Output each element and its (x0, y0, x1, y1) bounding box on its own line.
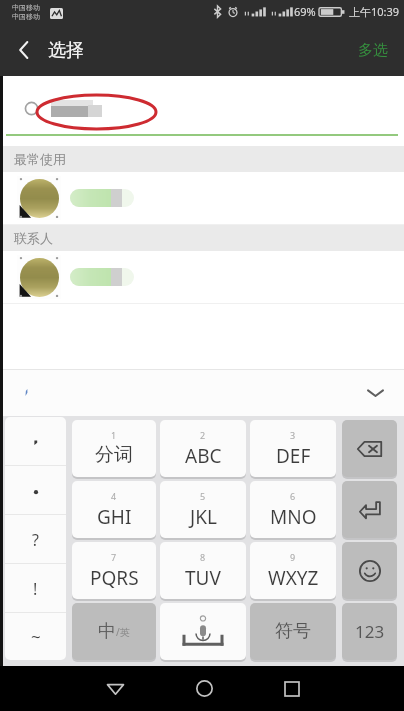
staticText: TUV (185, 565, 221, 591)
button[interactable]: 7 (72, 542, 156, 599)
button[interactable]: 中 (72, 603, 156, 660)
button[interactable]: Home (182, 666, 226, 711)
other: Backspace (342, 420, 397, 477)
button[interactable]: 9 (250, 542, 336, 599)
staticText: 中 (98, 620, 116, 643)
button[interactable]: 5 (160, 481, 246, 538)
staticText: /英 (116, 625, 130, 639)
button[interactable]: Enter (342, 481, 397, 538)
button[interactable]: 2 (160, 420, 246, 477)
button[interactable]: Recent apps (270, 666, 314, 711)
staticText: ! (33, 578, 38, 600)
staticText: MNO (270, 504, 317, 530)
staticText: 3 (290, 429, 296, 441)
staticText: JKL (190, 504, 217, 530)
button[interactable]: Hide keyboard (358, 376, 392, 410)
staticText: DEF (276, 443, 311, 469)
staticText: 联系人 (14, 230, 53, 246)
staticText: 4 (111, 490, 117, 502)
button[interactable]: ! (5, 564, 66, 613)
staticText: ~ (31, 625, 41, 648)
button[interactable] (0, 251, 404, 304)
other: Emoji (342, 542, 397, 599)
staticText: 中国移动 (12, 3, 40, 12)
button[interactable] (0, 76, 404, 136)
button[interactable]: 多选 (344, 24, 404, 76)
button[interactable]: Back (93, 666, 137, 711)
button[interactable]: 符号 (250, 603, 336, 660)
button[interactable]: ? (5, 515, 66, 564)
staticText: 符号 (275, 620, 311, 643)
button[interactable]: Back (0, 24, 48, 76)
button[interactable]: Backspace (342, 420, 397, 477)
button[interactable]: 4 (72, 481, 156, 538)
button[interactable]: 8 (160, 542, 246, 599)
staticText: 7 (111, 551, 117, 563)
button[interactable]: 1 (72, 420, 156, 477)
button[interactable]: ~ (5, 613, 66, 660)
staticText: WXYZ (268, 565, 319, 591)
button[interactable]: 6 (250, 481, 336, 538)
staticText: 2 (200, 429, 206, 441)
button[interactable]: 123 (342, 603, 397, 660)
button[interactable]: Space (160, 603, 246, 660)
staticText: ? (32, 529, 39, 551)
staticText: ABC (185, 443, 222, 469)
staticText: 9 (290, 551, 296, 563)
staticText: 多选 (358, 41, 388, 60)
button[interactable]: Emoji (342, 542, 397, 599)
staticText: 69% (294, 4, 316, 19)
button[interactable] (0, 172, 404, 225)
staticText: GHI (97, 504, 132, 530)
staticText: 分词 (95, 443, 133, 467)
other: Space (160, 603, 246, 660)
staticText: 6 (290, 490, 296, 502)
other: Enter (342, 481, 397, 538)
staticText: 上午10:39 (349, 4, 400, 19)
staticText: 123 (355, 620, 385, 643)
staticText: 8 (200, 551, 206, 563)
staticText: 中国移动 (12, 12, 40, 21)
button[interactable]: 3 (250, 420, 336, 477)
staticText: 最常使用 (14, 151, 66, 167)
button[interactable] (5, 466, 66, 515)
staticText: PQRS (90, 565, 139, 591)
staticText: 1 (111, 429, 117, 441)
button[interactable] (5, 417, 66, 466)
staticText: 5 (200, 490, 206, 502)
staticText: 选择 (48, 39, 84, 62)
